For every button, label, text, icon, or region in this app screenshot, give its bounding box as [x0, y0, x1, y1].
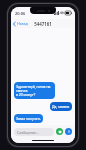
- staticText: 5447161: [34, 21, 52, 27]
- staticText: Назад: [17, 21, 28, 26]
- staticText: Да, можно: [52, 104, 70, 109]
- button[interactable]: Сообщение...: [14, 128, 54, 136]
- staticText: Сообщение...: [17, 130, 39, 135]
- button[interactable]: Send: [65, 128, 72, 135]
- button[interactable]: Attach: [56, 128, 63, 135]
- button[interactable]: Да, можно: [50, 102, 72, 111]
- staticText: Заказ получен.: [16, 116, 41, 121]
- button[interactable]: Заказ получен.: [14, 114, 43, 123]
- staticText: Здравствуй, готов на звонок в 20 минут?: [16, 84, 53, 97]
- staticText: 20:06: [15, 11, 26, 16]
- button[interactable]: Назад: [11, 20, 30, 27]
- button[interactable]: Здравствуй, готов на звонок в 20 минут?: [14, 82, 55, 99]
